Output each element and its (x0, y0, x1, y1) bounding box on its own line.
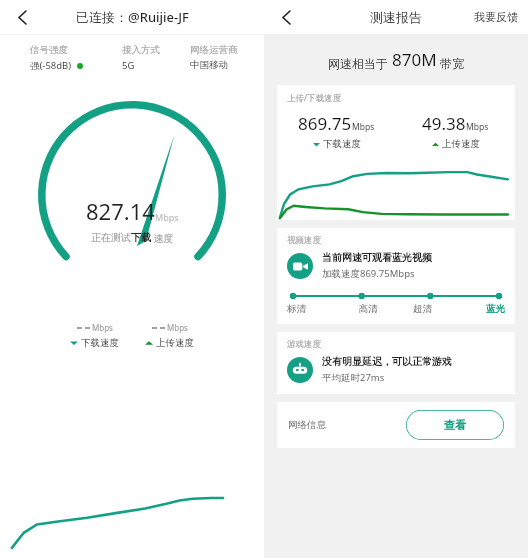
staticText: 上传速度 (442, 138, 480, 150)
button[interactable]: 我要反馈 (474, 10, 518, 24)
staticText: 下载 (131, 231, 151, 244)
staticText: 平均延时27ms (322, 371, 385, 384)
staticText: 信号强度 (30, 44, 68, 56)
staticText: 上传/下载速度 (287, 92, 342, 104)
staticText: Mbps (167, 322, 188, 333)
staticText: 网络信息 (288, 419, 326, 431)
staticText: Mbps (92, 322, 113, 333)
staticText: 游戏速度 (287, 339, 321, 350)
staticText: 网络运营商 (190, 44, 238, 56)
staticText: Mbps (155, 211, 179, 223)
staticText: 已连接：@Ruijie-JF (76, 8, 189, 26)
staticText: 下载速度 (323, 138, 361, 150)
staticText: 中国移动 (190, 59, 228, 71)
staticText: Mbps (466, 121, 489, 133)
staticText: 速度 (151, 231, 174, 245)
staticText: 5G (122, 59, 135, 72)
staticText: 蓝光 (450, 303, 505, 315)
button[interactable]: 返回 (8, 3, 36, 31)
staticText: 当前网速可观看蓝光视频 (322, 251, 432, 264)
staticText: 上传速度 (156, 337, 194, 349)
button[interactable]: 返回 (272, 3, 300, 31)
staticText: 网速相当于 (328, 55, 392, 71)
staticText: 强(-58dB) (30, 59, 72, 72)
staticText: 高清 (341, 303, 395, 315)
button[interactable]: 查看 (406, 410, 504, 440)
staticText: 870M (392, 48, 437, 71)
staticText: 超清 (395, 303, 450, 315)
staticText: Mbps (352, 121, 375, 133)
staticText: 加载速度869.75Mbps (322, 267, 415, 280)
staticText: 接入方式 (122, 44, 160, 56)
staticText: 下载速度 (81, 337, 119, 349)
staticText: 查看 (444, 418, 466, 432)
staticText: 我要反馈 (474, 10, 518, 24)
staticText: 标清 (287, 303, 341, 315)
staticText: 正在测试 (91, 231, 131, 244)
staticText: 827.14 (86, 196, 155, 226)
staticText: 测速报告 (370, 9, 422, 25)
staticText: 带宽 (437, 55, 465, 71)
staticText: 869.75 (298, 112, 352, 135)
staticText: 视频速度 (287, 235, 321, 246)
staticText: 没有明显延迟，可以正常游戏 (322, 355, 452, 368)
staticText: 49.38 (422, 112, 466, 135)
